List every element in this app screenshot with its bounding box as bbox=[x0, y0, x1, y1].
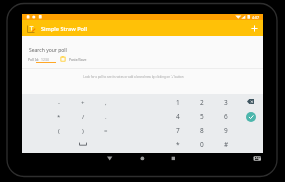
staticText: = bbox=[104, 127, 108, 135]
button[interactable]: App logo bbox=[25, 23, 37, 35]
staticText: Paste/Save bbox=[69, 57, 87, 62]
button[interactable]: # bbox=[217, 138, 235, 150]
staticText: # bbox=[224, 140, 229, 149]
button[interactable]: Backspace bbox=[241, 96, 259, 107]
staticText: , bbox=[105, 99, 107, 107]
button[interactable]: / bbox=[75, 111, 91, 122]
button[interactable]: Paste/Save bbox=[60, 56, 87, 62]
button[interactable]: * bbox=[169, 138, 187, 150]
button[interactable]: - bbox=[51, 97, 67, 108]
button[interactable]: Add poll bbox=[248, 22, 260, 34]
button[interactable]: Enter bbox=[246, 112, 256, 122]
button[interactable]: 6 bbox=[217, 110, 235, 122]
staticText: 4:07 bbox=[252, 15, 260, 20]
staticText: Search your poll bbox=[29, 47, 67, 54]
button[interactable]: Space bbox=[75, 139, 91, 149]
staticText: ) bbox=[82, 127, 84, 135]
staticText: 2 bbox=[200, 98, 204, 107]
staticText: 4 bbox=[176, 112, 180, 121]
button[interactable]: 7 bbox=[169, 124, 187, 136]
button[interactable]: * bbox=[51, 111, 67, 122]
button[interactable]: . bbox=[98, 111, 114, 122]
staticText: 3 bbox=[224, 98, 228, 107]
button[interactable]: 9 bbox=[217, 124, 235, 136]
staticText: 8 bbox=[200, 126, 204, 135]
staticText: . bbox=[105, 113, 107, 121]
button[interactable]: , bbox=[98, 97, 114, 108]
button[interactable]: ) bbox=[75, 125, 91, 136]
staticText: * bbox=[57, 113, 61, 121]
button[interactable]: 1 bbox=[169, 96, 187, 108]
staticText: * bbox=[176, 140, 180, 149]
button[interactable]: = bbox=[98, 125, 114, 136]
staticText: 1 bbox=[176, 98, 180, 107]
button[interactable]: + bbox=[75, 97, 91, 108]
staticText: Simple Straw Poll bbox=[41, 25, 88, 33]
staticText: 9 bbox=[224, 126, 228, 135]
button[interactable]: 2 bbox=[193, 96, 211, 108]
button[interactable]: ( bbox=[51, 125, 67, 136]
button[interactable]: 4 bbox=[169, 110, 187, 122]
staticText: 1234 bbox=[41, 57, 49, 62]
button[interactable]: 8 bbox=[193, 124, 211, 136]
staticText: Poll Id: bbox=[28, 57, 39, 62]
staticText: 5 bbox=[200, 112, 204, 121]
staticText: 6 bbox=[224, 112, 228, 121]
staticText: / bbox=[82, 113, 85, 121]
staticText: 7 bbox=[176, 126, 180, 135]
button[interactable]: 5 bbox=[193, 110, 211, 122]
staticText: + bbox=[81, 99, 85, 107]
staticText: - bbox=[58, 99, 60, 107]
button[interactable]: 0 bbox=[193, 138, 211, 150]
staticText: Look for a poll to see its votes or add … bbox=[13, 75, 254, 79]
staticText: ( bbox=[58, 127, 60, 135]
staticText: 0 bbox=[200, 140, 204, 149]
button[interactable]: 3 bbox=[217, 96, 235, 108]
